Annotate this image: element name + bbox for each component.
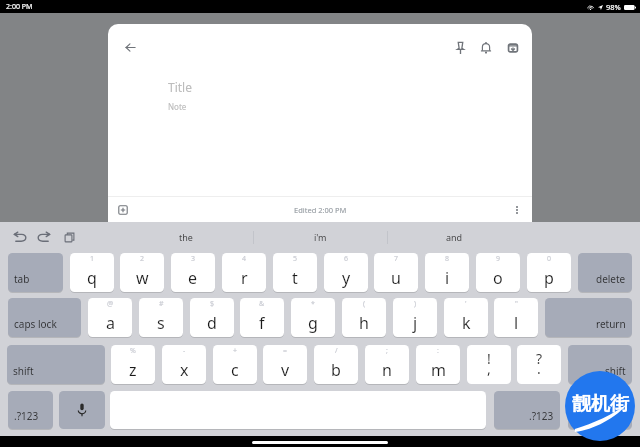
staticText: caps lock: [14, 317, 57, 331]
button[interactable]: .?123: [8, 391, 53, 429]
button[interactable]: -: [162, 345, 206, 384]
staticText: b: [331, 359, 341, 381]
button[interactable]: Add: [113, 200, 133, 220]
button[interactable]: Pin: [448, 35, 473, 60]
staticText: delete: [596, 272, 626, 286]
button[interactable]: Voice input: [59, 391, 105, 429]
button[interactable]: /: [314, 345, 358, 384]
button[interactable]: 9: [476, 253, 520, 292]
staticText: 9: [496, 254, 501, 264]
button[interactable]: #: [139, 298, 183, 337]
button[interactable]: shift: [568, 345, 632, 384]
staticText: ': [465, 299, 467, 309]
button[interactable]: 0: [527, 253, 571, 292]
staticText: =: [283, 346, 288, 356]
staticText: a: [106, 312, 115, 334]
staticText: (: [363, 299, 366, 309]
button[interactable]: 1: [70, 253, 114, 292]
button[interactable]: return: [545, 298, 632, 337]
staticText: n: [382, 359, 392, 381]
staticText: .: [537, 359, 541, 378]
staticText: 5: [293, 254, 298, 264]
staticText: l: [514, 312, 519, 334]
button[interactable]: shift: [7, 345, 105, 384]
staticText: -: [183, 346, 186, 356]
staticText: o: [493, 267, 503, 289]
button[interactable]: Back: [116, 33, 144, 61]
staticText: Title: [168, 79, 192, 95]
staticText: q: [87, 267, 97, 289]
staticText: and: [446, 231, 463, 243]
button[interactable]: =: [263, 345, 307, 384]
button[interactable]: Paste: [60, 228, 78, 246]
button[interactable]: More options: [507, 200, 527, 220]
staticText: ,: [487, 359, 491, 378]
staticText: t: [292, 267, 298, 289]
button[interactable]: ?: [517, 345, 561, 384]
button[interactable]: (: [342, 298, 386, 337]
staticText: 靓机街: [572, 392, 629, 416]
button[interactable]: 4: [222, 253, 266, 292]
button[interactable]: :: [416, 345, 460, 384]
button[interactable]: !: [467, 345, 511, 384]
button[interactable]: $: [190, 298, 234, 337]
staticText: 0: [547, 254, 552, 264]
button[interactable]: ': [444, 298, 488, 337]
staticText: h: [359, 312, 369, 334]
button[interactable]: [568, 391, 632, 429]
staticText: r: [241, 267, 248, 289]
staticText: d: [207, 312, 217, 334]
staticText: c: [231, 359, 239, 381]
staticText: Note: [168, 101, 187, 112]
staticText: 7: [394, 254, 399, 264]
button[interactable]: @: [88, 298, 132, 337]
button[interactable]: Undo: [10, 228, 30, 246]
button[interactable]: &: [240, 298, 284, 337]
button[interactable]: Redo: [34, 228, 54, 246]
staticText: 2:00 PM: [6, 2, 33, 12]
button[interactable]: ;: [365, 345, 409, 384]
staticText: ?: [536, 349, 543, 368]
staticText: w: [136, 267, 149, 289]
button[interactable]: 5: [273, 253, 317, 292]
button[interactable]: 3: [171, 253, 215, 292]
staticText: 4: [242, 254, 247, 264]
staticText: 1: [90, 254, 95, 264]
button[interactable]: Reminder: [473, 35, 498, 60]
button[interactable]: 7: [374, 253, 418, 292]
button[interactable]: ": [494, 298, 538, 337]
button[interactable]: +: [213, 345, 257, 384]
staticText: .?123: [529, 409, 554, 423]
staticText: return: [596, 317, 626, 331]
staticText: y: [342, 267, 351, 289]
staticText: /: [335, 346, 338, 356]
staticText: $: [210, 299, 215, 309]
staticText: :: [437, 346, 439, 356]
staticText: *: [311, 299, 315, 309]
button[interactable]: delete: [578, 253, 632, 292]
staticText: p: [544, 267, 554, 289]
button[interactable]: i'm: [253, 222, 387, 252]
staticText: +: [233, 346, 238, 356]
button[interactable]: *: [291, 298, 335, 337]
staticText: z: [129, 359, 137, 381]
button[interactable]: ): [393, 298, 437, 337]
button[interactable]: and: [387, 222, 521, 252]
button[interactable]: the: [119, 222, 253, 252]
button[interactable]: %: [111, 345, 155, 384]
staticText: shift: [605, 364, 626, 378]
button[interactable]: 8: [425, 253, 469, 292]
button[interactable]: 6: [324, 253, 368, 292]
button[interactable]: Archive: [500, 35, 525, 60]
button[interactable]: .?123: [494, 391, 560, 429]
staticText: 8: [445, 254, 450, 264]
staticText: shift: [13, 364, 34, 378]
staticText: 2: [140, 254, 145, 264]
staticText: ": [515, 299, 518, 309]
button[interactable]: caps lock: [8, 298, 81, 337]
button[interactable]: 2: [120, 253, 164, 292]
button[interactable]: tab: [8, 253, 63, 292]
staticText: ;: [386, 346, 388, 356]
staticText: %: [130, 346, 136, 356]
